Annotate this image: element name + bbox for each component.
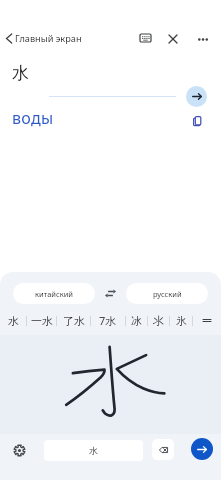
button[interactable]: китайский [13, 283, 95, 304]
button[interactable]: More options [191, 27, 215, 51]
button[interactable]: Swap languages [95, 283, 126, 304]
button[interactable]: 水 [0, 311, 26, 330]
staticText: Главный экран [15, 32, 82, 45]
staticText: 水 [12, 63, 29, 84]
staticText: китайский [35, 289, 73, 299]
button[interactable]: Expand suggestions [193, 311, 220, 330]
staticText: 氺 [153, 314, 164, 328]
button[interactable]: Close [161, 27, 185, 51]
button[interactable]: Backspace [152, 439, 174, 460]
button[interactable]: Enter [191, 438, 213, 460]
button[interactable]: 氺 [148, 311, 169, 330]
staticText: 水 [8, 314, 19, 328]
staticText: русский [153, 289, 182, 299]
button[interactable]: Handwriting input area [0, 335, 221, 434]
button[interactable]: Copy [187, 111, 208, 132]
button[interactable]: Главный экран [6, 25, 82, 51]
button[interactable]: Translate [186, 86, 207, 107]
button[interactable]: русский [126, 283, 208, 304]
button[interactable]: 一水 [27, 311, 56, 330]
button[interactable]: Keyboard [133, 26, 157, 50]
staticText: 冰 [131, 314, 142, 328]
button[interactable]: 了水 [57, 311, 90, 330]
button[interactable]: 氷 [170, 311, 192, 330]
staticText: 氷 [176, 314, 187, 328]
staticText: 水 [89, 445, 98, 456]
staticText: 了水 [63, 314, 85, 328]
staticText: 一水 [31, 314, 53, 328]
button[interactable]: Settings [8, 439, 30, 461]
button[interactable]: 水 [44, 440, 143, 461]
staticText: 7水 [99, 313, 117, 328]
button[interactable]: 7水 [91, 311, 125, 330]
staticText: воды [12, 107, 54, 129]
button[interactable]: 冰 [126, 311, 147, 330]
